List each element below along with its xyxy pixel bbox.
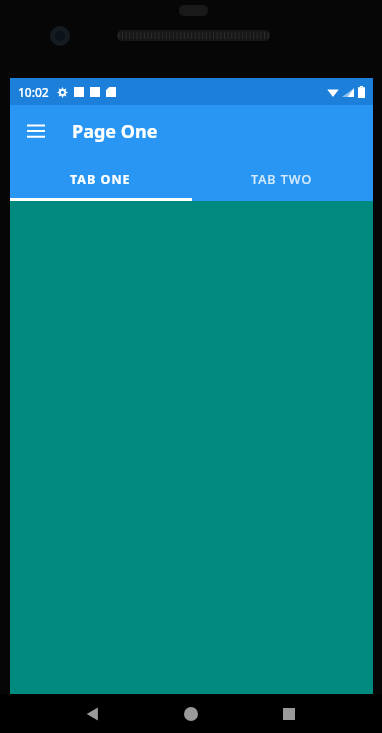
staticText: TAB ONE bbox=[70, 171, 131, 188]
button[interactable]: Home bbox=[171, 694, 211, 733]
button[interactable]: TAB ONE bbox=[10, 157, 191, 201]
button[interactable]: Open navigation drawer bbox=[14, 109, 58, 153]
button[interactable]: TAB TWO bbox=[191, 157, 373, 201]
staticText: 10:02 bbox=[18, 84, 49, 100]
staticText: Page One bbox=[72, 119, 158, 144]
staticText: TAB TWO bbox=[251, 171, 313, 188]
button[interactable]: Recent apps bbox=[269, 694, 309, 733]
button[interactable]: Back bbox=[73, 694, 113, 733]
